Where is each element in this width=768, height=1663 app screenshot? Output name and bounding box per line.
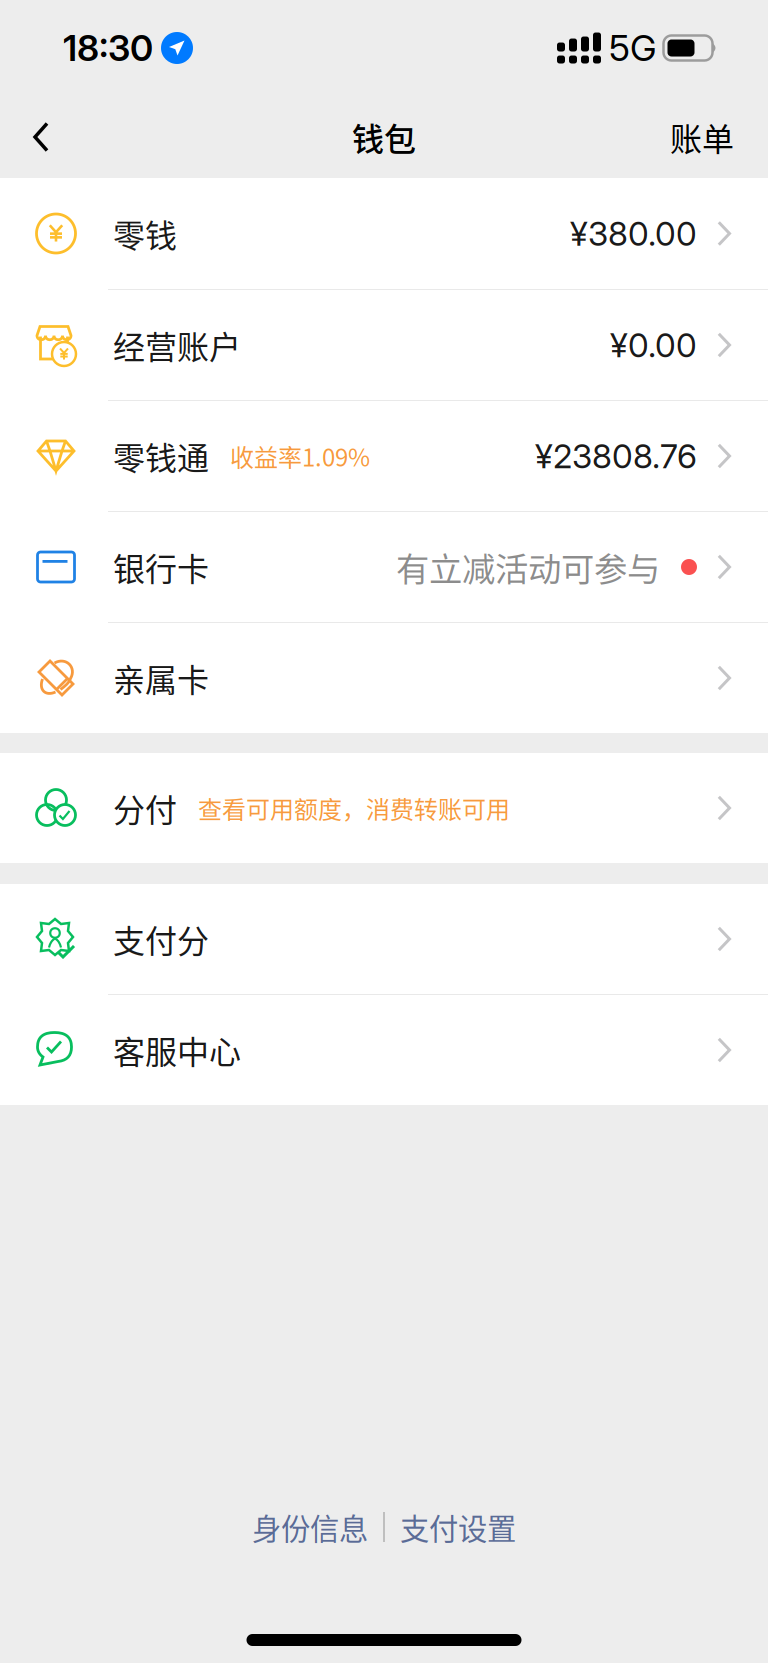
staticText: 零钱通 (113, 433, 209, 479)
staticText: 身份信息 (252, 1506, 368, 1548)
staticText: 亲属卡 (113, 655, 209, 701)
staticText: 查看可用额度，消费转账可用 (198, 791, 510, 825)
staticText: 支付分 (113, 916, 209, 962)
button[interactable]: 零钱通 (0, 401, 768, 511)
staticText: 5G (609, 26, 656, 70)
button[interactable]: 经营账户 (0, 290, 768, 400)
staticText: 18:30 (63, 26, 153, 70)
button[interactable]: Back (0, 99, 75, 174)
button[interactable]: 亲属卡 (0, 623, 768, 733)
staticText: ¥380.00 (570, 213, 697, 254)
button[interactable]: 零钱 (0, 178, 768, 289)
button[interactable]: 身份信息 (237, 1496, 383, 1558)
button[interactable]: 客服中心 (0, 995, 768, 1105)
staticText: 零钱 (113, 210, 177, 257)
staticText: ¥23808.76 (535, 436, 697, 476)
staticText: 账单 (670, 114, 734, 160)
staticText: 收益率1.09% (230, 439, 370, 473)
button[interactable]: 银行卡 (0, 512, 768, 622)
button[interactable]: 支付设置 (385, 1496, 531, 1558)
button[interactable]: 账单 (644, 94, 768, 180)
staticText: 支付设置 (400, 1506, 516, 1548)
staticText: 客服中心 (113, 1027, 241, 1073)
button[interactable]: 分付 (0, 753, 768, 863)
staticText: ¥0.00 (610, 325, 697, 365)
staticText: 经营账户 (113, 322, 241, 368)
button[interactable]: 支付分 (0, 884, 768, 994)
staticText: 有立减活动可参与 (396, 543, 660, 591)
staticText: 分付 (113, 785, 177, 831)
staticText: 钱包 (352, 114, 416, 160)
staticText: 银行卡 (113, 544, 209, 590)
